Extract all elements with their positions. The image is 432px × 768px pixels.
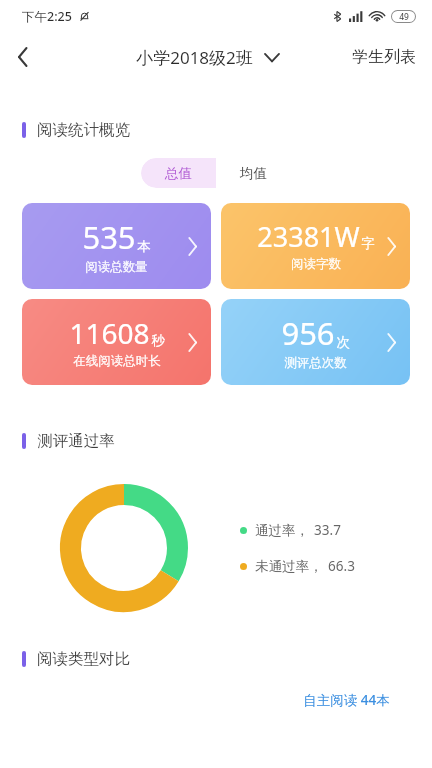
button[interactable]: 11608 [22,299,211,385]
staticText: 均值 [240,165,267,182]
staticText: 阅读类型对比 [37,649,130,669]
button[interactable]: 23381W [221,203,410,289]
button[interactable]: 总值 [141,158,216,188]
button[interactable]: 均值 [216,158,291,188]
staticText: 阅读字数 [291,256,341,272]
staticText: 本 [137,238,151,255]
staticText: 测评总次数 [284,355,347,371]
button[interactable]: 小学2018级2班 [136,46,279,69]
button[interactable]: 535 [22,203,211,289]
staticText: 秒 [151,332,165,349]
staticText: 小学2018级2班 [136,46,253,69]
staticText: 通过率， [255,522,309,539]
staticText: 字 [361,235,375,252]
staticText: 535 [82,216,136,258]
staticText: 33.7 [314,521,341,539]
staticText: 学生列表 [352,47,416,67]
staticText: 总值 [165,165,192,182]
staticText: 阅读总数量 [85,259,148,275]
staticText: 下午2:25 [22,8,72,25]
staticText: 23381W [257,218,360,255]
staticText: 未通过率， [255,558,323,575]
button[interactable]: 返回 [0,34,46,80]
staticText: 自主阅读 44本 [303,691,390,709]
staticText: 次 [336,334,350,351]
staticText: 测评通过率 [37,431,115,451]
staticText: 66.3 [328,557,355,575]
staticText: 在线阅读总时长 [73,353,161,369]
staticText: 49 [399,11,409,22]
staticText: 956 [281,312,335,354]
button[interactable]: 学生列表 [336,39,432,75]
staticText: 阅读统计概览 [37,120,130,140]
staticText: 11608 [69,314,150,352]
button[interactable]: 956 [221,299,410,385]
